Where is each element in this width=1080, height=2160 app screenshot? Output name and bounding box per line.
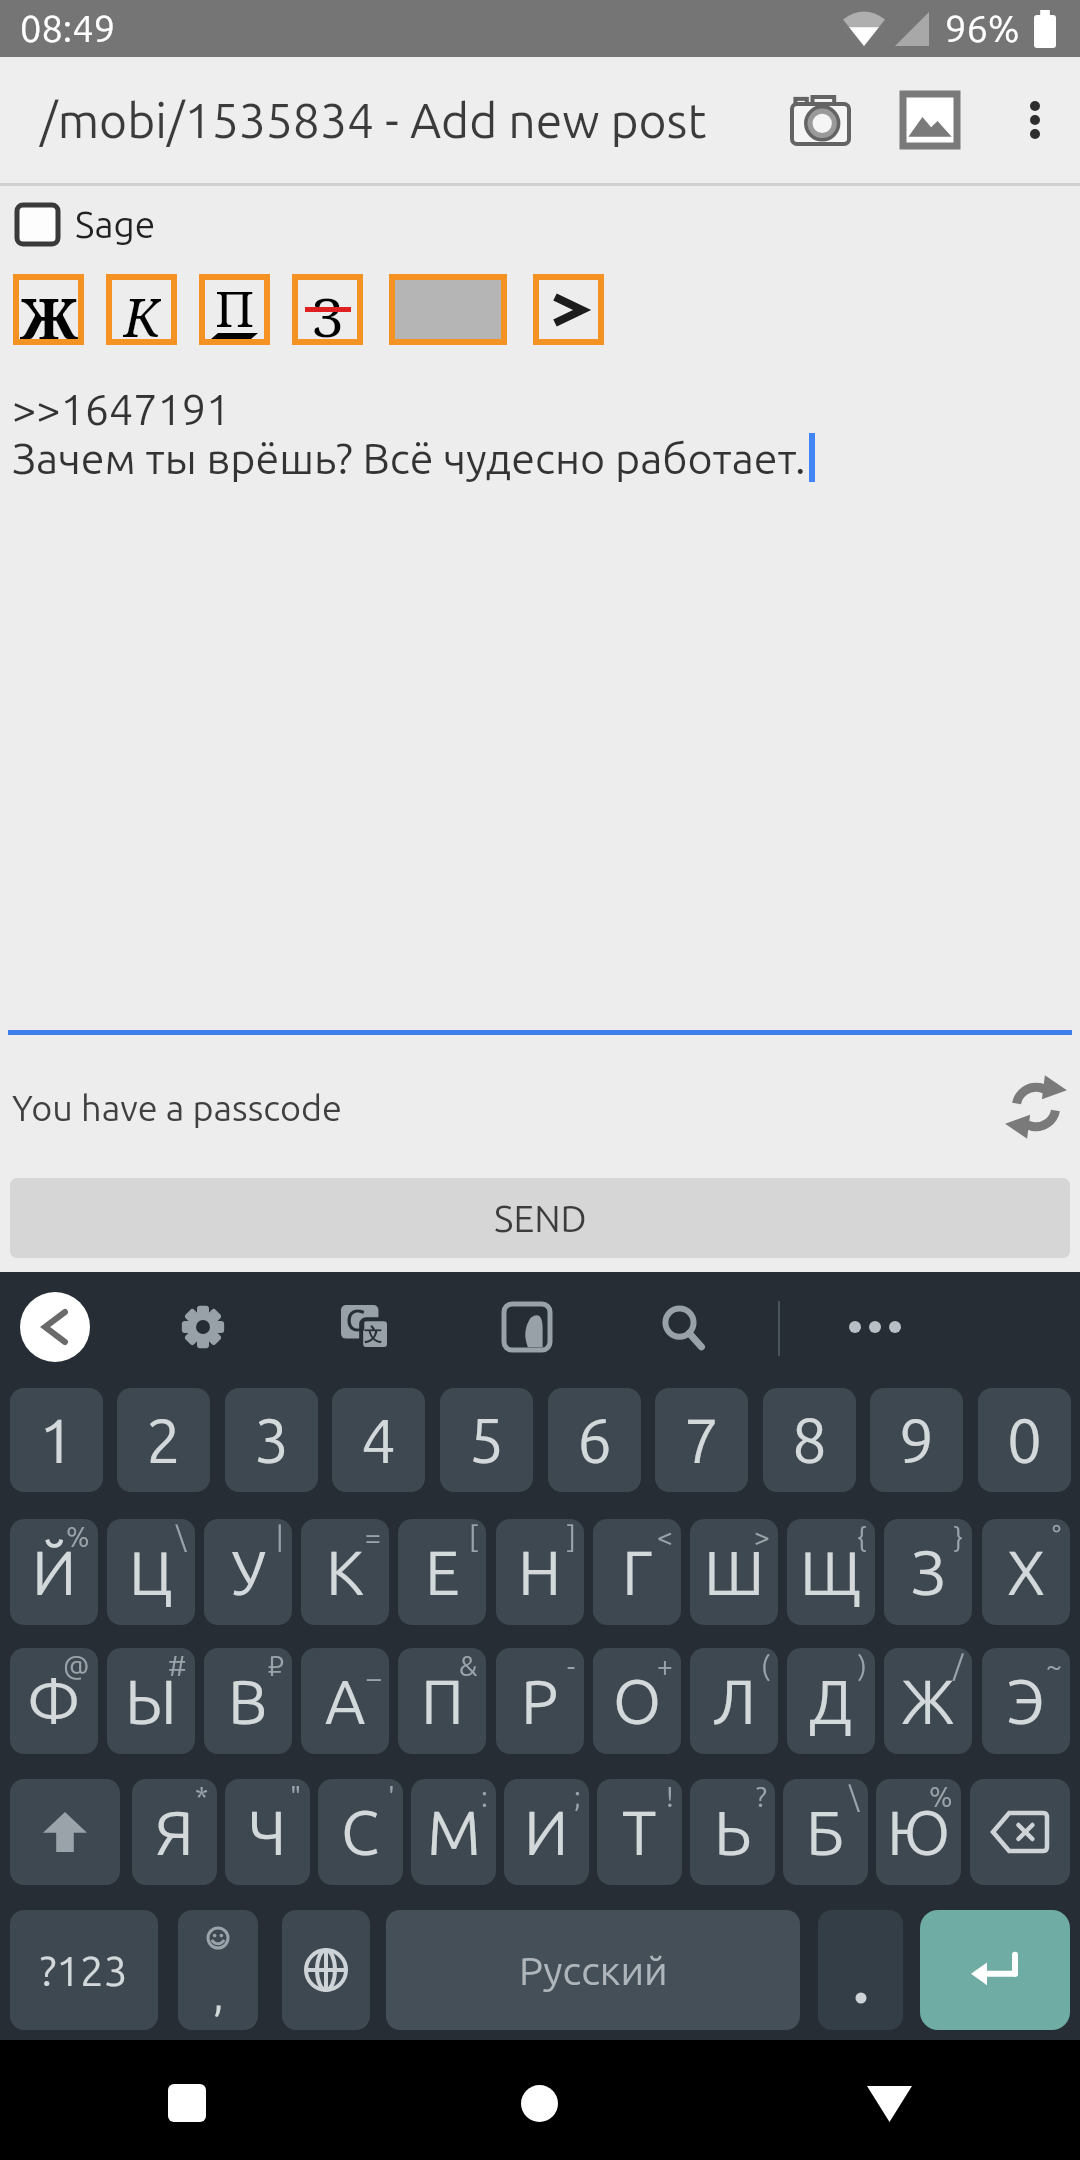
button[interactable]: П [398, 1648, 486, 1754]
staticText: Ж [20, 280, 78, 339]
staticText: У [231, 1537, 266, 1607]
button[interactable]: С [318, 1779, 403, 1885]
button[interactable]: Т [597, 1779, 682, 1885]
staticText: } [954, 1521, 964, 1552]
button[interactable] [168, 2084, 206, 2122]
button[interactable] [521, 2085, 558, 2122]
button[interactable] [1008, 1079, 1064, 1135]
button[interactable] [492, 1292, 562, 1362]
button[interactable]: 7 [655, 1388, 748, 1492]
button[interactable]: 5 [440, 1388, 533, 1492]
staticText: П [421, 1666, 464, 1736]
button[interactable]: Ц [107, 1519, 195, 1625]
button[interactable]: М [411, 1779, 496, 1885]
button[interactable]: ?123 [10, 1910, 158, 2030]
staticText: \ [176, 1521, 187, 1552]
button[interactable]: Ь [690, 1779, 775, 1885]
button[interactable]: Л [690, 1648, 778, 1754]
button[interactable]: Б [783, 1779, 868, 1885]
button[interactable]: 6 [548, 1388, 641, 1492]
button[interactable] [770, 57, 870, 183]
button[interactable] [990, 57, 1080, 183]
button[interactable]: 9 [870, 1388, 963, 1492]
button[interactable]: Я [132, 1779, 217, 1885]
staticText: Х [1007, 1537, 1046, 1607]
button[interactable] [840, 1292, 910, 1362]
button[interactable]: Ю [876, 1779, 961, 1885]
staticText: ?123 [40, 1947, 128, 1994]
staticText: = [365, 1521, 381, 1552]
staticText: 3 [254, 1405, 289, 1475]
staticText: Зачем ты врёшь? Всё чудесно работает. [12, 434, 806, 482]
staticText: О [613, 1666, 662, 1736]
button[interactable]: И [504, 1779, 589, 1885]
button[interactable] [870, 57, 990, 183]
button[interactable]: К [301, 1519, 389, 1625]
button[interactable]: 8 [763, 1388, 856, 1492]
button[interactable] [10, 1779, 120, 1885]
button[interactable]: Русский [386, 1910, 800, 2030]
staticText: | [276, 1521, 284, 1552]
button[interactable]: 2 [117, 1388, 210, 1492]
button[interactable]: Щ [787, 1519, 875, 1625]
staticText: SEND [494, 1198, 587, 1239]
button[interactable]: Ж [884, 1648, 972, 1754]
staticText: Н [518, 1537, 562, 1607]
button[interactable]: 1 [10, 1388, 103, 1492]
button[interactable]: Ш [690, 1519, 778, 1625]
staticText: / [953, 1650, 964, 1681]
staticText: Ь [714, 1797, 752, 1867]
button[interactable]: 4 [332, 1388, 425, 1492]
staticText: 1 [39, 1405, 74, 1475]
button[interactable]: Е [398, 1519, 486, 1625]
staticText: П [215, 274, 255, 333]
button[interactable]: Р [496, 1648, 584, 1754]
button[interactable]: Ы [107, 1648, 195, 1754]
button[interactable]: В [204, 1648, 292, 1754]
button[interactable]: 0 [978, 1388, 1071, 1492]
button[interactable]: Ч [225, 1779, 310, 1885]
button[interactable] [20, 1292, 90, 1362]
staticText: ' [388, 1781, 395, 1812]
staticText: 2 [146, 1405, 181, 1475]
button[interactable]: О [593, 1648, 681, 1754]
button[interactable]: Й [10, 1519, 98, 1625]
staticText: Ы [125, 1666, 177, 1736]
button[interactable]: Э [982, 1648, 1070, 1754]
button[interactable]: Д [787, 1648, 875, 1754]
button[interactable]: У [204, 1519, 292, 1625]
button[interactable]: Ж [19, 280, 78, 339]
button[interactable] [168, 1292, 238, 1362]
staticText: ) [858, 1650, 867, 1681]
button[interactable]: G [330, 1292, 400, 1362]
button[interactable] [539, 280, 598, 339]
button[interactable]: К [112, 280, 171, 339]
button[interactable]: П [205, 280, 264, 339]
button[interactable]: А [301, 1648, 389, 1754]
button[interactable]: SEND [10, 1178, 1070, 1258]
button[interactable]: Ф [10, 1648, 98, 1754]
button[interactable]: 3 [225, 1388, 318, 1492]
button[interactable]: З [884, 1519, 972, 1625]
button[interactable] [867, 2086, 912, 2122]
button[interactable] [818, 1910, 903, 2030]
button[interactable]: Н [496, 1519, 584, 1625]
button[interactable]: Г [593, 1519, 681, 1625]
staticText: Щ [800, 1537, 862, 1607]
staticText: Е [425, 1537, 460, 1607]
button[interactable] [282, 1910, 370, 2030]
staticText: - [567, 1650, 576, 1681]
staticText: 5 [469, 1405, 504, 1475]
button[interactable]: Х [982, 1519, 1070, 1625]
button[interactable] [970, 1779, 1070, 1885]
button[interactable] [920, 1910, 1070, 2030]
button[interactable]: , [178, 1910, 258, 2030]
staticText: 7 [684, 1405, 719, 1475]
staticText: # [168, 1650, 187, 1681]
button[interactable]: З [298, 280, 357, 339]
staticText: ? [756, 1781, 767, 1812]
button[interactable]: Sage [17, 204, 156, 245]
staticText: Ш [704, 1537, 765, 1607]
button[interactable] [648, 1292, 718, 1362]
